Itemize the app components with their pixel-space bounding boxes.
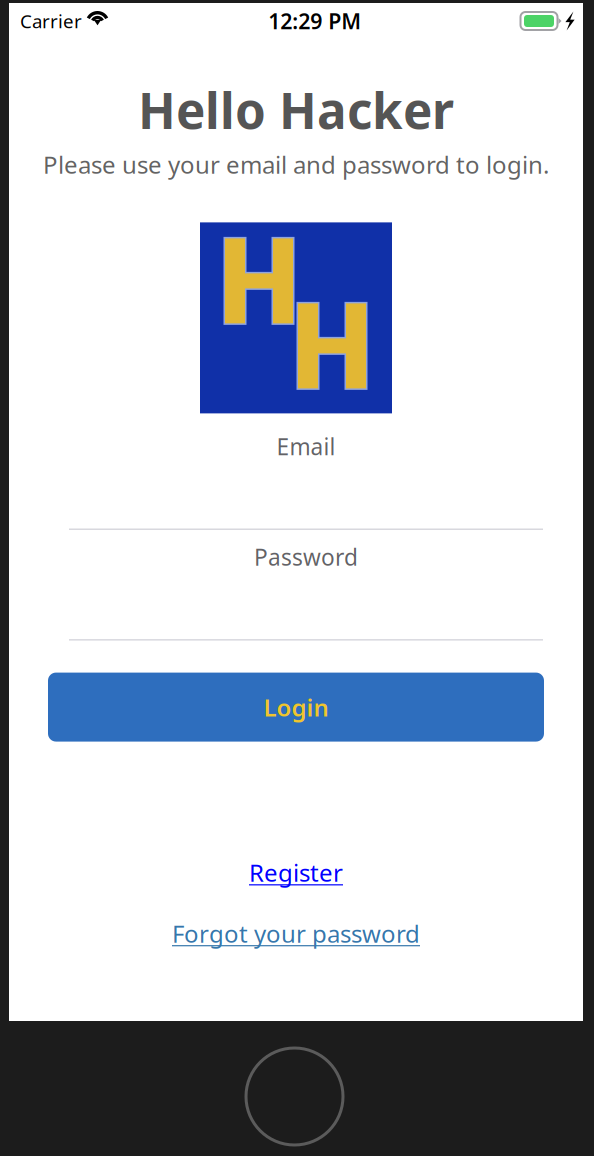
button[interactable]: Login — [48, 673, 544, 742]
staticText: Carrier — [20, 9, 82, 33]
button[interactable]: Forgot your password — [172, 917, 420, 949]
staticText: Password — [254, 542, 358, 572]
button[interactable]: Register — [249, 857, 343, 888]
staticText: Login — [263, 691, 328, 723]
staticText: 12:29 PM — [268, 7, 361, 35]
staticText: Register — [249, 857, 343, 888]
staticText: Please use your email and password to lo… — [43, 148, 549, 180]
staticText: Email — [276, 431, 335, 461]
staticText: Forgot your password — [172, 917, 420, 949]
staticText: Hello Hacker — [138, 77, 454, 142]
button[interactable]: Home — [246, 1048, 343, 1145]
button[interactable]: Email — [69, 431, 543, 530]
button[interactable]: Password — [69, 542, 543, 641]
